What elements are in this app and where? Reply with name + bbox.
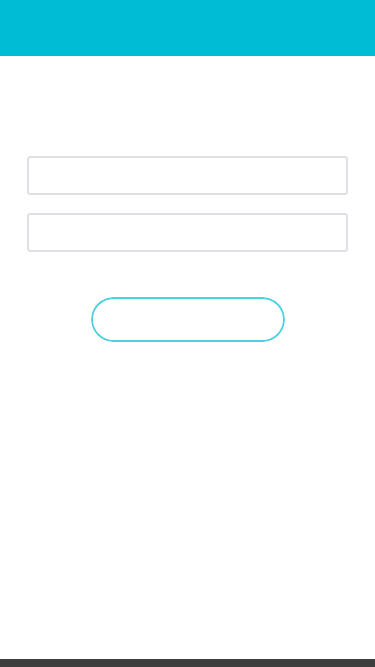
- button[interactable]: Sign in: [91, 297, 285, 342]
- button[interactable]: Password: [27, 213, 348, 252]
- button[interactable]: Email address: [27, 156, 348, 195]
